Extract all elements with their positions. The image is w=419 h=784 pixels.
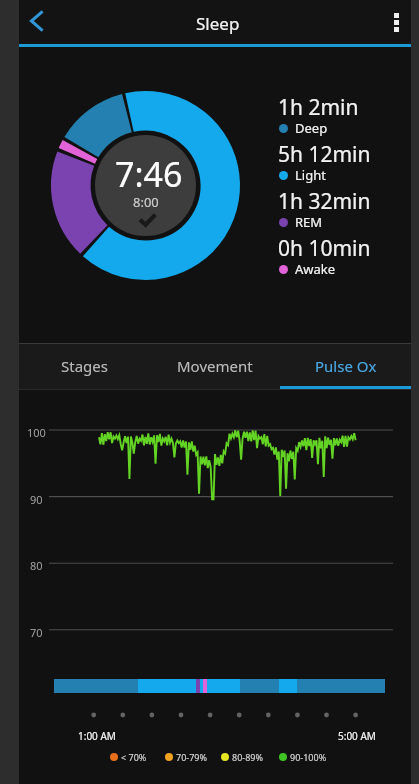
staticText: REM <box>295 213 323 231</box>
staticText: 5h 12min <box>278 140 371 169</box>
staticText: 5:00 AM <box>338 729 376 743</box>
staticText: Pulse Ox <box>315 356 377 376</box>
staticText: 90 <box>30 492 43 507</box>
button[interactable]: Pulse Ox <box>280 344 411 389</box>
button[interactable]: 1h 32min <box>19 188 411 233</box>
button[interactable] <box>54 679 385 693</box>
button[interactable]: 1h 2min <box>19 94 411 139</box>
button[interactable]: 5h 12min <box>19 141 411 186</box>
staticText: 1:00 AM <box>78 729 116 743</box>
button[interactable]: Stages <box>19 344 149 389</box>
staticText: 1h 32min <box>278 187 371 216</box>
staticText: Awake <box>295 260 336 278</box>
button[interactable]: 80-89% <box>221 750 263 764</box>
staticText: 80 <box>30 558 43 573</box>
button[interactable]: 90-100% <box>279 750 327 764</box>
button[interactable]: 70-79% <box>165 750 207 764</box>
staticText: 90-100% <box>290 751 327 763</box>
staticText: < 70% <box>121 751 147 763</box>
staticText: 8:00 <box>133 193 159 211</box>
staticText: Sleep <box>196 12 240 35</box>
staticText: 1h 2min <box>278 93 359 122</box>
staticText: 7:46 <box>115 151 183 197</box>
staticText: 80-89% <box>232 751 263 763</box>
staticText: 100 <box>27 425 46 440</box>
button[interactable]: 0h 10min <box>19 235 411 280</box>
staticText: Deep <box>295 119 328 137</box>
button[interactable]: Back <box>19 0 63 44</box>
button[interactable]: < 70% <box>110 750 147 764</box>
staticText: 0h 10min <box>278 234 371 263</box>
staticText: 70-79% <box>176 751 207 763</box>
staticText: Stages <box>61 356 108 376</box>
button[interactable]: Movement <box>149 344 280 389</box>
button[interactable]: More options <box>382 0 411 44</box>
staticText: Movement <box>177 356 253 376</box>
staticText: Light <box>295 166 326 184</box>
staticText: 70 <box>30 625 43 640</box>
